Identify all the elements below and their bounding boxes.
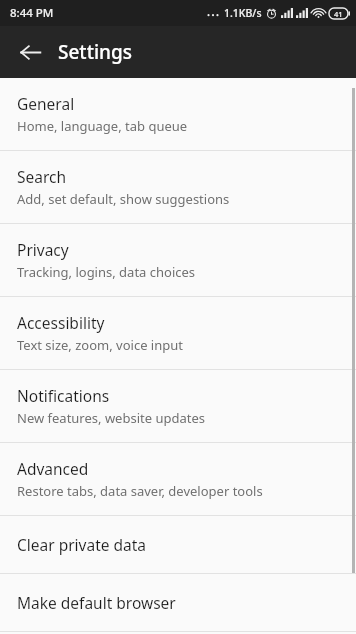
staticText: Restore tabs, data saver, developer tool…: [17, 482, 263, 500]
button[interactable]: Notifications: [0, 370, 356, 442]
button[interactable]: Search: [0, 151, 356, 223]
staticText: Search: [17, 166, 67, 187]
staticText: 1.1KB/s: [224, 6, 262, 20]
button[interactable]: Advanced: [0, 443, 356, 515]
staticText: Tracking, logins, data choices: [17, 263, 196, 281]
staticText: Text size, zoom, voice input: [17, 336, 183, 354]
button[interactable]: Back: [8, 30, 52, 74]
staticText: Advanced: [17, 458, 89, 479]
staticText: 41: [334, 9, 343, 19]
button[interactable]: Make default browser: [0, 574, 356, 631]
button[interactable]: Privacy: [0, 224, 356, 296]
staticText: Accessibility: [17, 312, 105, 333]
staticText: Make default browser: [17, 592, 176, 613]
button[interactable]: Accessibility: [0, 297, 356, 369]
staticText: Clear private data: [17, 534, 147, 555]
staticText: General: [17, 93, 75, 114]
staticText: Privacy: [17, 239, 69, 260]
staticText: Notifications: [17, 385, 110, 406]
staticText: Home, language, tab queue: [17, 117, 188, 135]
staticText: Settings: [58, 39, 132, 65]
staticText: New features, website updates: [17, 409, 206, 427]
staticText: 8:44 PM: [10, 5, 54, 21]
staticText: Add, set default, show suggestions: [17, 190, 230, 208]
button[interactable]: Clear private data: [0, 516, 356, 573]
button[interactable]: General: [0, 78, 356, 150]
